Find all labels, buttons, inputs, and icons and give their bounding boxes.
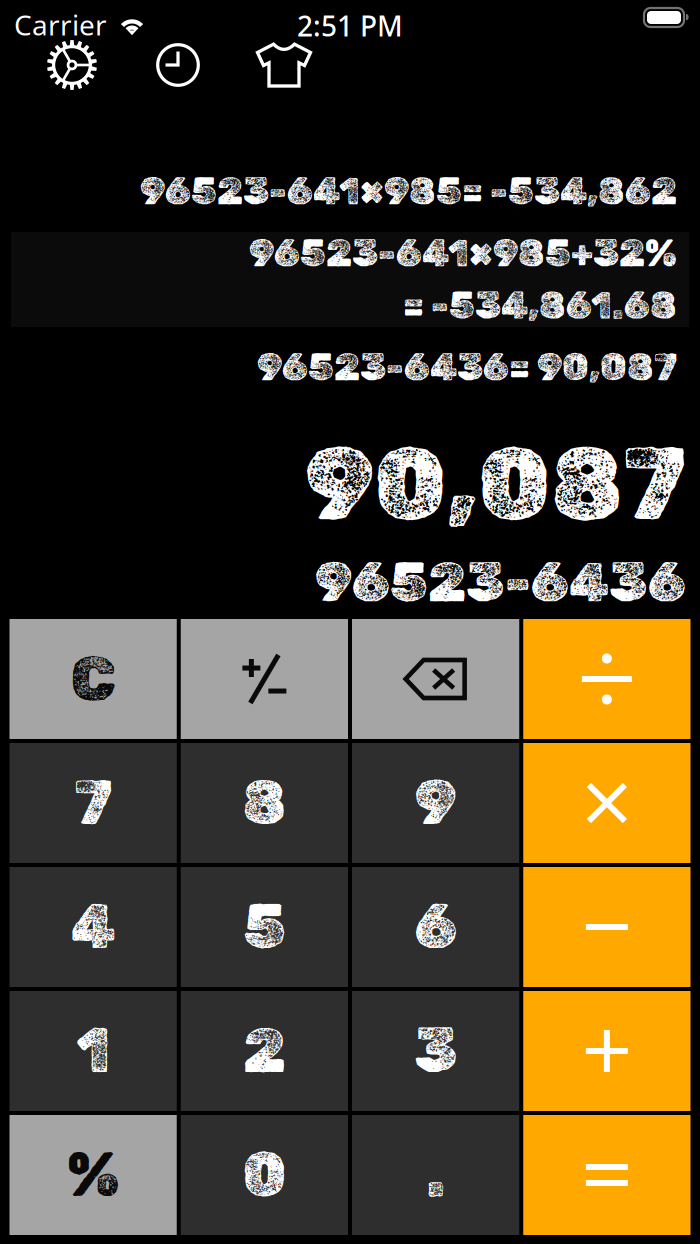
button[interactable]: 3 xyxy=(352,991,519,1111)
staticText: 0 xyxy=(242,1139,286,1211)
button[interactable]: Settings xyxy=(19,37,125,93)
staticText: 7 xyxy=(74,767,112,839)
button[interactable]: Delete xyxy=(352,619,519,739)
button[interactable]: 1 xyxy=(9,991,177,1111)
staticText: 90,087 xyxy=(305,424,686,544)
staticText: . xyxy=(426,1139,445,1211)
staticText: 2 xyxy=(243,1015,286,1087)
button[interactable]: % xyxy=(9,1115,177,1235)
button[interactable]: 0 xyxy=(181,1115,348,1235)
staticText: 2:51 PM xyxy=(297,7,403,44)
button[interactable]: 9 xyxy=(352,743,519,863)
staticText: Carrier xyxy=(14,6,107,43)
button[interactable]: 8 xyxy=(181,743,348,863)
button[interactable]: History xyxy=(125,37,231,93)
button[interactable]: C xyxy=(9,619,177,739)
staticText: 5 xyxy=(243,891,285,963)
button[interactable]: 96523-641×985= -534,862 xyxy=(11,151,689,232)
button[interactable]: Add xyxy=(523,991,690,1111)
staticText: 1 xyxy=(76,1015,110,1087)
staticText: 96523-641×985+32% xyxy=(249,231,677,275)
staticText: 96523-6436 xyxy=(315,550,686,615)
button[interactable]: . xyxy=(352,1115,519,1235)
staticText: % xyxy=(67,1139,119,1211)
button[interactable]: Equals xyxy=(523,1115,690,1235)
button[interactable]: Themes xyxy=(231,37,337,93)
button[interactable]: 6 xyxy=(352,867,519,987)
button[interactable]: 96523-6436= 90,087 xyxy=(11,327,689,408)
staticText: 6 xyxy=(415,891,457,963)
staticText: 4 xyxy=(71,891,116,963)
staticText: 3 xyxy=(414,1015,457,1087)
button[interactable]: 7 xyxy=(9,743,177,863)
staticText: 9 xyxy=(415,767,457,839)
button[interactable]: 5 xyxy=(181,867,348,987)
button[interactable]: 2 xyxy=(181,991,348,1111)
button[interactable]: 4 xyxy=(9,867,177,987)
staticText: 96523-641×985= -534,862 xyxy=(140,169,677,214)
staticText: = -534,861.68 xyxy=(403,283,677,328)
button[interactable]: Subtract xyxy=(523,867,690,987)
staticText: 96523-6436= 90,087 xyxy=(257,345,677,390)
button[interactable]: 96523-641×985+32% xyxy=(11,232,689,327)
button[interactable]: Divide xyxy=(523,619,690,739)
button[interactable]: Multiply xyxy=(523,743,690,863)
staticText: 8 xyxy=(242,767,286,839)
staticText: C xyxy=(71,643,116,715)
button[interactable]: Plus minus xyxy=(181,619,348,739)
